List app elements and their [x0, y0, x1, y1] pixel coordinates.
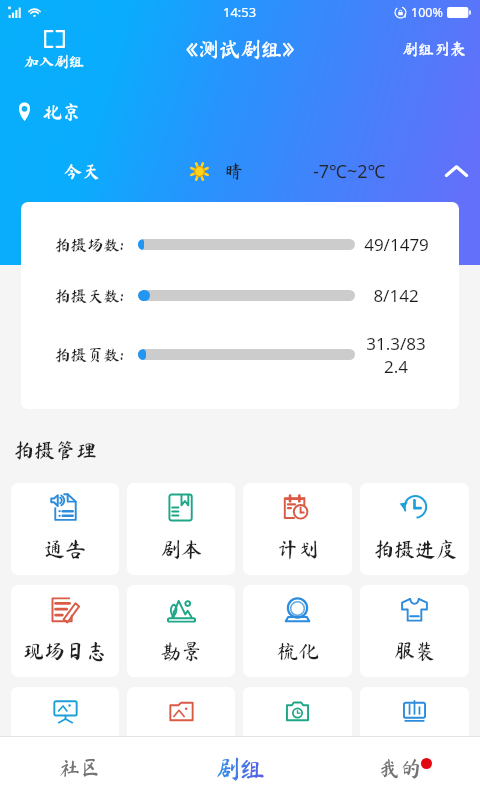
- staticText: 加入剧组: [24, 54, 85, 69]
- staticText: 北京: [43, 102, 82, 121]
- button[interactable]: 计划: [243, 483, 352, 575]
- staticText: 梳化: [277, 641, 319, 662]
- button[interactable]: 通告: [11, 483, 119, 575]
- button[interactable]: 置景: [11, 687, 119, 779]
- staticText: 社区: [59, 758, 101, 779]
- staticText: 计划: [277, 539, 319, 560]
- staticText: 《测试剧组》: [177, 39, 303, 60]
- staticText: 拍摄管理: [13, 440, 97, 461]
- staticText: 14:53: [223, 3, 257, 21]
- staticText: 剧组: [215, 756, 266, 781]
- button[interactable]: 剧照: [127, 687, 235, 779]
- staticText: 通告: [44, 539, 86, 560]
- button[interactable]: 加入剧组: [20, 28, 89, 71]
- button[interactable]: 剧组: [160, 737, 320, 800]
- staticText: 拍摄天数:: [54, 287, 124, 303]
- staticText: 晴: [225, 162, 243, 180]
- staticText: 拍摄进度: [373, 539, 457, 560]
- button[interactable]: 社区: [0, 737, 160, 800]
- button[interactable]: 服装: [360, 585, 469, 677]
- staticText: 拍摄场数:: [54, 236, 124, 252]
- staticText: 现场日志: [23, 641, 107, 662]
- button[interactable]: 器材: [243, 687, 352, 779]
- staticText: 8/142: [373, 284, 419, 307]
- staticText: 100%: [411, 4, 443, 21]
- staticText: 统计: [394, 743, 436, 764]
- button[interactable]: 统计: [360, 687, 469, 779]
- staticText: 49/1479: [364, 233, 429, 256]
- staticText: 拍摄页数:: [54, 346, 124, 362]
- button[interactable]: 勘景: [127, 585, 235, 677]
- button[interactable]: 收起: [440, 155, 472, 187]
- staticText: 剧组列表: [402, 41, 467, 57]
- button[interactable]: 我的: [320, 737, 480, 800]
- staticText: 置景: [44, 743, 86, 764]
- staticText: 服装: [394, 641, 436, 662]
- staticText: 31.3/832.4: [363, 332, 429, 376]
- button[interactable]: 剧组列表: [394, 35, 480, 63]
- staticText: 我的: [379, 758, 421, 779]
- button[interactable]: 现场日志: [11, 585, 119, 677]
- staticText: 今天: [64, 162, 100, 180]
- button[interactable]: 拍摄进度: [360, 483, 469, 575]
- staticText: -7℃~2℃: [313, 159, 386, 184]
- button[interactable]: 梳化: [243, 585, 352, 677]
- staticText: 勘景: [160, 641, 202, 662]
- staticText: 剧本: [160, 539, 202, 560]
- button[interactable]: 剧本: [127, 483, 235, 575]
